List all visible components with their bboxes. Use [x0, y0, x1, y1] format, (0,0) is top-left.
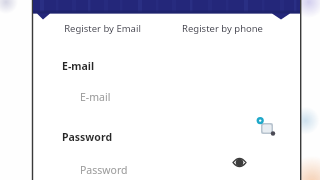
button[interactable]: E-mail	[62, 84, 262, 110]
button[interactable]: Register by phone	[162, 20, 282, 36]
button[interactable]: Password	[62, 157, 232, 180]
button[interactable]: Register by Email	[42, 20, 162, 36]
staticText: E-mail	[62, 59, 95, 73]
staticText: E-mail	[80, 90, 111, 104]
staticText: Register by Email	[64, 22, 141, 35]
staticText: Password	[80, 163, 128, 177]
button[interactable]: Show password	[231, 154, 248, 171]
staticText: Register by phone	[182, 22, 263, 35]
staticText: Password	[62, 130, 113, 144]
